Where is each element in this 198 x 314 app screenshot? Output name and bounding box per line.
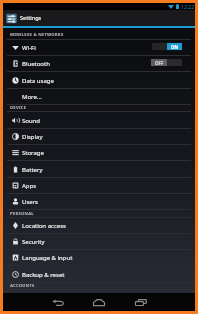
- staticText: ON: [171, 44, 179, 50]
- button[interactable]: Apps: [3, 178, 195, 194]
- staticText: Location access: [22, 222, 66, 230]
- button[interactable]: Storage: [3, 145, 195, 161]
- button[interactable]: Users: [3, 194, 195, 210]
- staticText: Bluetooth: [22, 60, 50, 68]
- staticText: PERSONAL: [10, 211, 34, 217]
- staticText: Backup & reset: [22, 271, 65, 279]
- staticText: Apps: [22, 182, 37, 190]
- button[interactable]: Wi-Fi: [3, 40, 195, 56]
- button[interactable]: Location access: [3, 218, 195, 234]
- button[interactable]: Home: [89, 293, 109, 311]
- button[interactable]: OFF: [151, 59, 182, 66]
- button[interactable]: Battery: [3, 162, 195, 178]
- staticText: Settings: [20, 14, 42, 22]
- staticText: Data usage: [22, 77, 54, 85]
- staticText: Wi-Fi: [22, 44, 36, 52]
- staticText: Users: [22, 198, 38, 206]
- button[interactable]: ON: [152, 43, 182, 50]
- button[interactable]: Data usage: [3, 73, 195, 89]
- staticText: Security: [22, 238, 45, 246]
- button[interactable]: More...: [3, 89, 195, 105]
- button[interactable]: Bluetooth: [3, 56, 195, 72]
- staticText: 12:22: [181, 3, 195, 10]
- staticText: WIRELESS & NETWORKS: [10, 32, 64, 38]
- button[interactable]: Language & input: [3, 250, 195, 266]
- staticText: ACCOUNTS: [10, 283, 35, 289]
- button[interactable]: Back: [48, 293, 68, 311]
- staticText: Sound: [22, 117, 41, 125]
- button[interactable]: Recent apps: [131, 293, 151, 311]
- staticText: DEVICE: [10, 105, 27, 111]
- staticText: Battery: [22, 166, 43, 174]
- staticText: More...: [22, 93, 42, 101]
- button[interactable]: Security: [3, 234, 195, 250]
- button[interactable]: Sound: [3, 113, 195, 129]
- staticText: Storage: [22, 149, 44, 157]
- button[interactable]: Backup & reset: [3, 267, 195, 283]
- staticText: Display: [22, 133, 43, 141]
- staticText: OFF: [155, 60, 164, 66]
- staticText: Language & input: [22, 254, 73, 262]
- button[interactable]: Display: [3, 129, 195, 145]
